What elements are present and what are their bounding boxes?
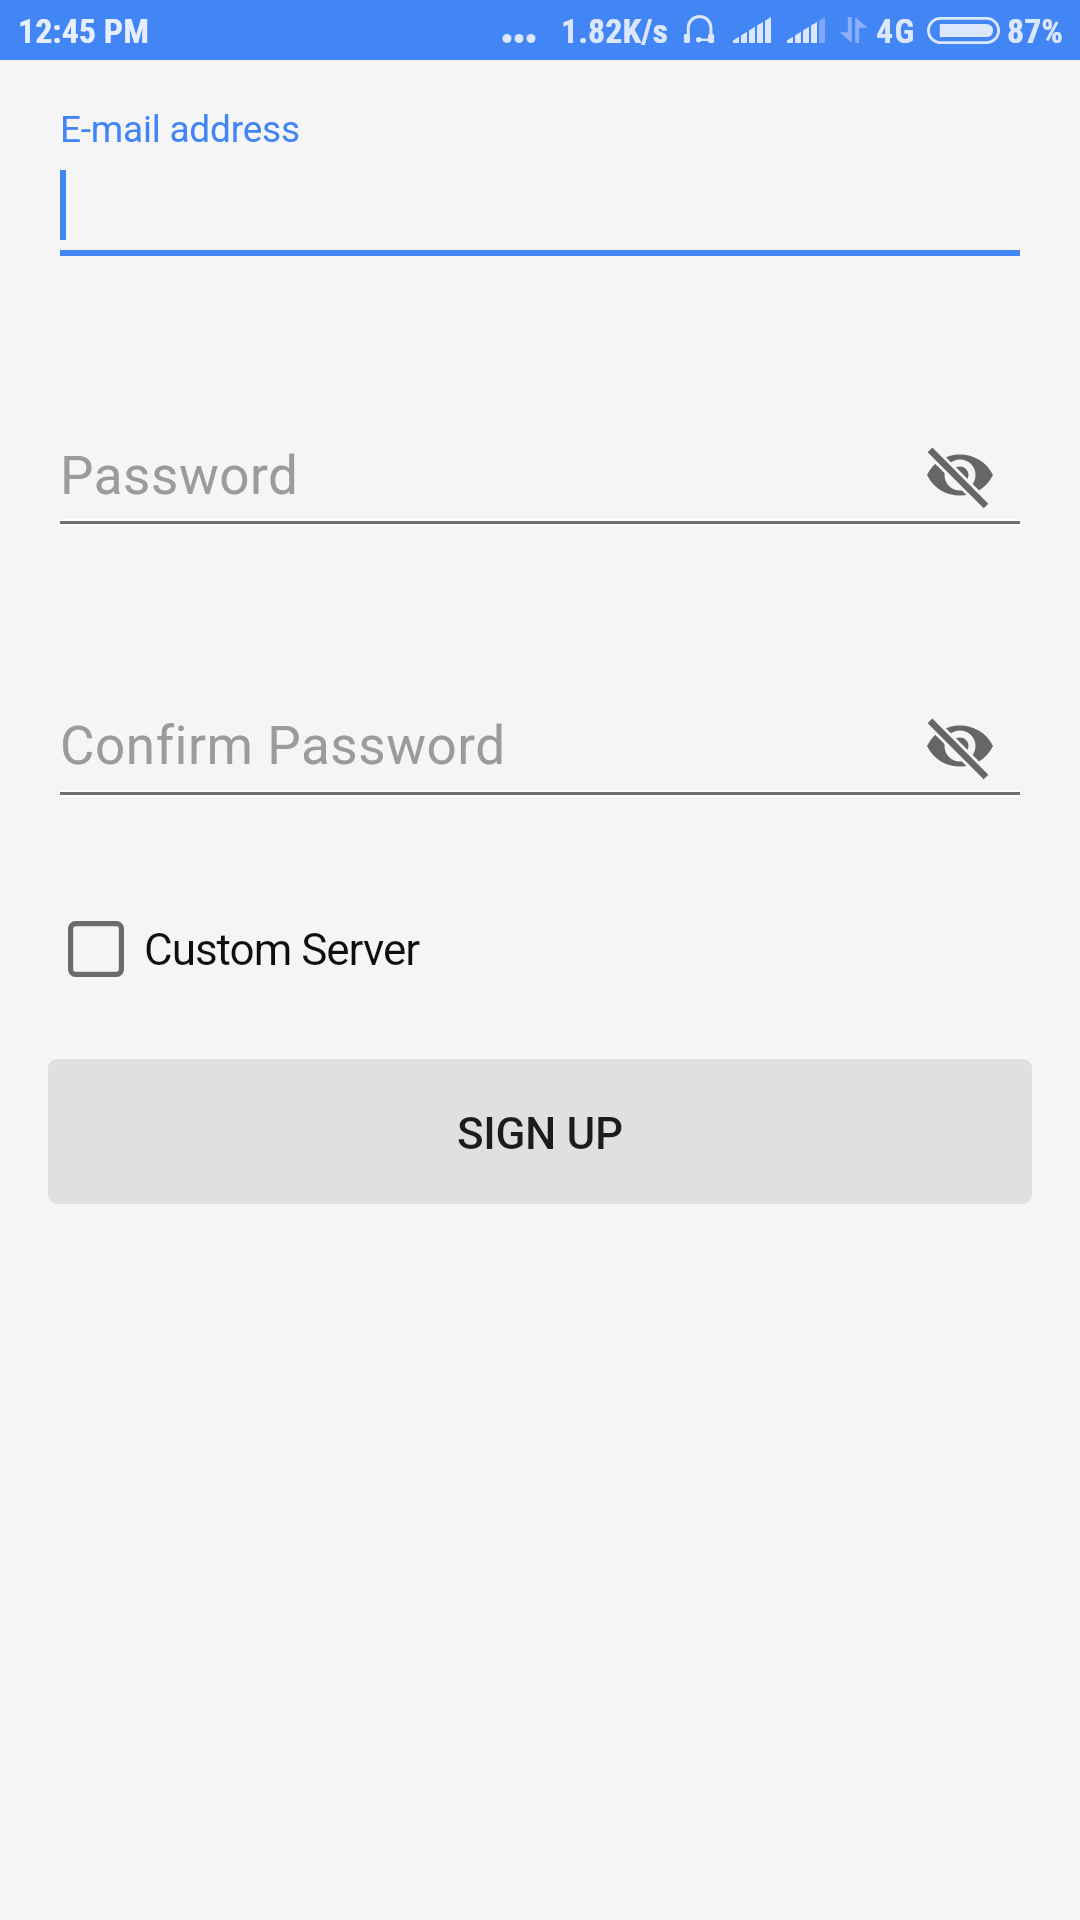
staticText: 12:45 PM (18, 11, 149, 51)
button[interactable]: Custom Server (60, 913, 500, 985)
staticText: 87% (1007, 11, 1064, 51)
button[interactable]: Toggle password visibility (909, 424, 1011, 526)
staticText: Custom Server (144, 924, 420, 976)
staticText: E-mail address (60, 108, 300, 151)
staticText: Confirm Password (60, 715, 506, 777)
staticText: Password (60, 445, 299, 507)
staticText: 1.82K/s (561, 11, 668, 51)
button[interactable]: E-mail address input (60, 160, 1020, 252)
staticText: SIGN UP (457, 1108, 623, 1160)
button[interactable]: Toggle password visibility (909, 695, 1011, 797)
button[interactable]: SIGN UP (48, 1059, 1032, 1204)
staticText: 4G (876, 11, 916, 51)
